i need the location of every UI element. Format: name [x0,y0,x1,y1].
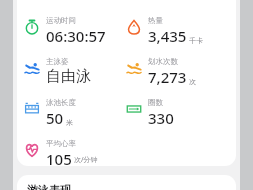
staticText: 7,273 [148,67,187,87]
button[interactable]: Duration [24,16,126,46]
staticText: 330 [148,108,174,128]
other: Swimming [126,60,142,76]
staticText: 次 [189,77,196,86]
staticText: 游泳表现 [27,183,71,190]
staticText: 06:30:57 [46,26,106,46]
staticText: 热量 [148,16,163,25]
other: Duration [24,19,40,35]
staticText: 50 [46,108,64,128]
staticText: 泳池长度 [46,98,76,107]
other: Laps [126,101,142,117]
staticText: 自由泳 [46,67,91,86]
staticText: 米 [66,118,73,127]
staticText: 圈数 [148,98,163,107]
staticText: 运动时间 [46,16,76,25]
other: Calories [126,19,142,35]
button[interactable]: Pool length [24,98,126,128]
staticText: 平均心率 [46,139,76,148]
button[interactable]: Swimming [24,57,126,86]
staticText: 千卡 [189,36,203,45]
other: Swimming [24,60,40,76]
button[interactable]: 游泳表现 [17,175,236,190]
staticText: 105 [46,149,72,166]
staticText: 次/分钟 [74,155,98,165]
button[interactable]: Calories [126,16,229,46]
staticText: 划水次数 [148,57,178,66]
button[interactable]: Swimming [126,57,229,87]
button[interactable]: Average heart rate [24,139,126,166]
staticText: 主泳姿 [46,57,69,66]
other: Pool length [24,101,40,117]
button[interactable]: Laps [126,98,229,128]
other: Average heart rate [24,142,40,158]
staticText: 3,435 [148,26,187,46]
